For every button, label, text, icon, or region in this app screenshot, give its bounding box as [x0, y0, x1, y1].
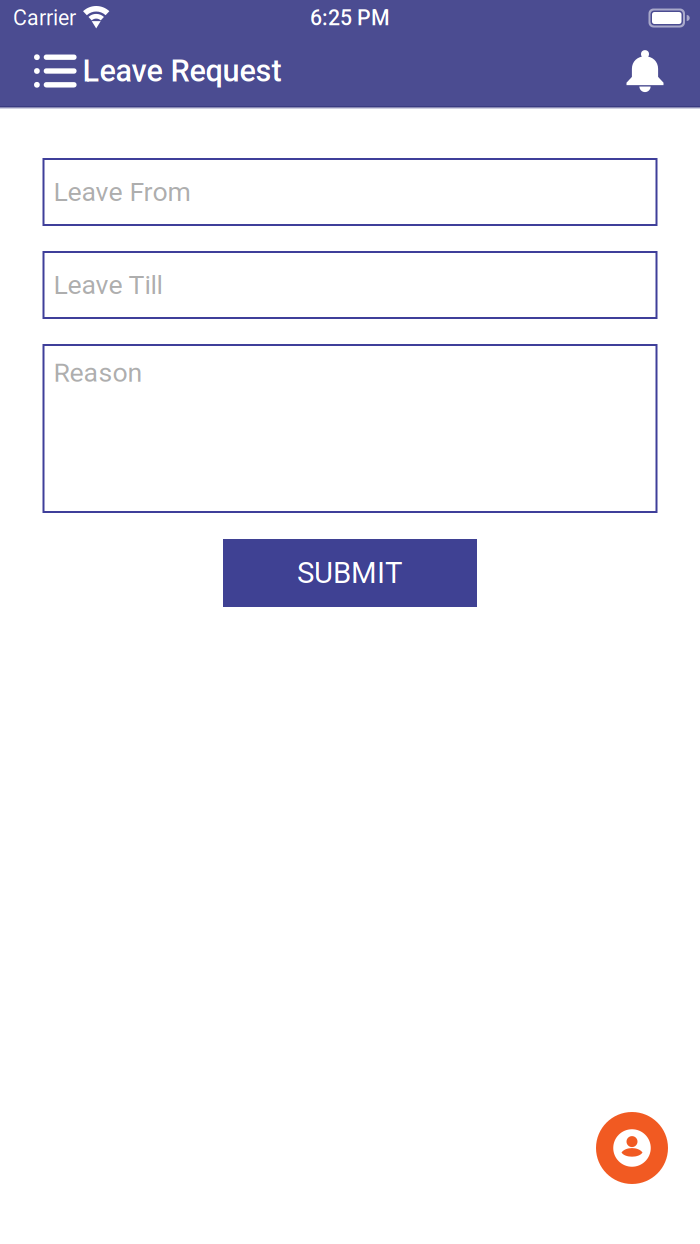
staticText: Leave From — [53, 176, 190, 208]
button[interactable]: Notifications — [610, 39, 700, 102]
staticText: Leave Till — [53, 269, 162, 301]
staticText: 6:25 PM — [310, 5, 390, 30]
staticText: SUBMIT — [297, 556, 403, 590]
staticText: Reason — [53, 357, 142, 388]
staticText: Carrier — [13, 5, 76, 30]
button[interactable]: Leave From — [43, 159, 656, 225]
staticText: Leave Request — [83, 53, 282, 89]
button[interactable]: Profile — [596, 1112, 668, 1184]
button[interactable]: Leave Till — [43, 252, 656, 318]
button[interactable]: Reason — [43, 345, 656, 512]
button[interactable]: SUBMIT — [223, 539, 477, 607]
button[interactable]: Menu — [0, 40, 83, 102]
